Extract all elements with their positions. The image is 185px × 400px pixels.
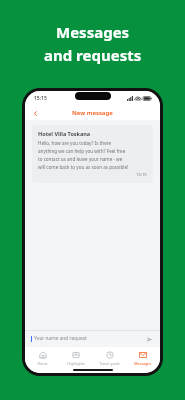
staticText: Home [37,361,48,366]
button[interactable]: Travel guide [93,350,126,367]
staticText: Hotel Villa Toskana [38,130,91,137]
button[interactable]: Hotel Villa Toskana [32,125,153,183]
button[interactable]: Send [144,334,154,344]
staticText: Messages [134,361,151,366]
button[interactable]: Highlights [59,350,92,367]
staticText: 15:15 [34,95,47,102]
staticText: will come back to you as soon as possibl… [38,164,129,170]
staticText: Your name and request [34,335,87,342]
button[interactable]: Your name and request [34,335,144,342]
staticText: and requests [44,45,142,65]
staticText: to contact us and leave your name - we [38,156,123,162]
staticText: Hello, how are you today? Is there [38,140,112,146]
button[interactable]: Messages [126,350,159,367]
button[interactable]: Back [29,107,41,119]
staticText: Messages [56,22,130,42]
staticText: New message [72,109,113,117]
staticText: anything we can help you with? Feel free [38,148,126,154]
staticText: Highlights [67,361,85,366]
button[interactable]: Home [26,350,59,367]
staticText: 15:15 [136,172,147,178]
staticText: Travel guide [99,361,120,366]
